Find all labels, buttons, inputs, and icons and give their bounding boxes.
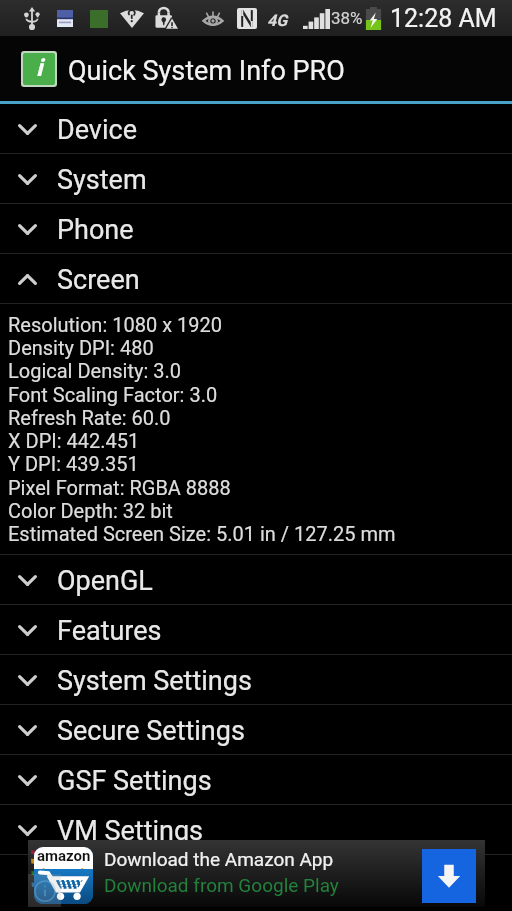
staticText: 38% bbox=[331, 8, 363, 28]
button[interactable]: Secure Settings bbox=[0, 705, 512, 755]
button[interactable]: Phone bbox=[0, 204, 512, 254]
staticText: Color Depth: 32 bit bbox=[8, 499, 173, 522]
button[interactable] bbox=[28, 840, 485, 907]
staticText: Device bbox=[57, 114, 137, 146]
button[interactable]: System Settings bbox=[0, 655, 512, 705]
staticText: amazon bbox=[37, 847, 91, 865]
staticText: OpenGL bbox=[57, 565, 153, 597]
staticText: System bbox=[57, 164, 147, 196]
staticText: Quick System Info PRO bbox=[68, 55, 345, 87]
staticText: Download the Amazon App bbox=[104, 848, 334, 870]
button[interactable]: Features bbox=[0, 605, 512, 655]
staticText: GSF Settings bbox=[57, 765, 212, 797]
staticText: i bbox=[36, 54, 43, 82]
staticText: Y DPI: 439.351 bbox=[8, 452, 139, 475]
staticText: Secure Settings bbox=[57, 715, 245, 747]
staticText: Screen bbox=[57, 264, 140, 296]
staticText: X DPI: 442.451 bbox=[8, 429, 140, 452]
button[interactable]: System bbox=[0, 154, 512, 204]
button[interactable]: Download bbox=[422, 849, 476, 903]
staticText: 4G bbox=[267, 11, 288, 30]
staticText: System Settings bbox=[57, 665, 252, 697]
staticText: Estimated Screen Size: 5.01 in / 127.25 … bbox=[8, 522, 396, 545]
staticText: Download from Google Play bbox=[104, 874, 339, 896]
staticText: VM Settings bbox=[57, 815, 204, 847]
staticText: 12:28 AM bbox=[390, 4, 497, 33]
button[interactable]: Device bbox=[0, 104, 512, 154]
staticText: Font Scaling Factor: 3.0 bbox=[8, 383, 218, 406]
staticText: Density DPI: 480 bbox=[8, 336, 154, 359]
button[interactable]: OpenGL bbox=[0, 555, 512, 605]
staticText: Pixel Format: RGBA 8888 bbox=[8, 476, 231, 499]
button[interactable]: VM Settings bbox=[0, 805, 512, 855]
staticText: Resolution: 1080 x 1920 bbox=[8, 313, 222, 336]
button[interactable]: Ad information bbox=[28, 874, 61, 907]
button[interactable]: Screen bbox=[0, 254, 512, 304]
staticText: Logical Density: 3.0 bbox=[8, 359, 181, 382]
button[interactable]: GSF Settings bbox=[0, 755, 512, 805]
staticText: Phone bbox=[57, 214, 134, 246]
staticText: Refresh Rate: 60.0 bbox=[8, 406, 171, 429]
staticText: Features bbox=[57, 615, 162, 647]
